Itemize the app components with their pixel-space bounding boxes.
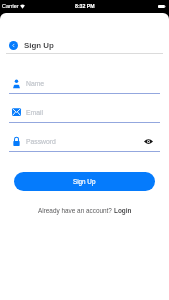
button[interactable]: Password <box>11 135 154 148</box>
staticText: Password <box>26 138 56 146</box>
button[interactable]: Back <box>9 41 18 50</box>
staticText: Sign Up <box>73 178 96 185</box>
button[interactable]: Already have an account? <box>0 204 169 216</box>
staticText: Email <box>26 109 43 117</box>
staticText: Name <box>26 80 45 88</box>
staticText: Sign Up <box>24 41 54 50</box>
staticText: 8:32 PM <box>75 3 95 9</box>
button[interactable]: Email <box>11 106 154 119</box>
staticText: Login <box>114 207 132 214</box>
button[interactable]: Sign Up <box>14 172 155 191</box>
staticText: Carrier <box>2 3 19 9</box>
staticText: Already have an account? <box>38 207 114 214</box>
button[interactable]: Name <box>11 77 154 90</box>
button[interactable]: Show password <box>143 136 154 147</box>
